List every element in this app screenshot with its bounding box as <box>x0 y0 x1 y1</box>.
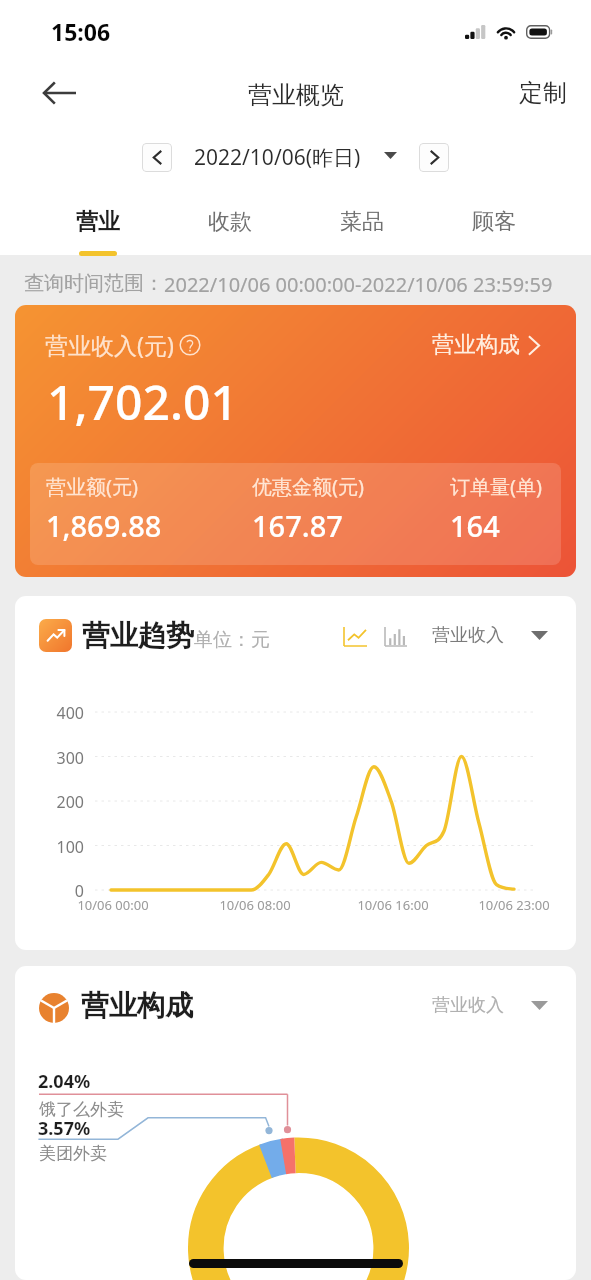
staticText: 营业概览 <box>248 80 344 110</box>
staticText: 营业额(元) <box>46 473 138 500</box>
staticText: 顾客 <box>472 208 516 236</box>
staticText: 10/06 16:00 <box>343 896 443 914</box>
staticText: 查询时间范围： <box>24 271 164 296</box>
staticText: 营业构成 <box>432 331 520 359</box>
staticText: 单位：元 <box>194 628 270 652</box>
staticText: 2022/10/06 00:00:00-2022/10/06 23:59:59 <box>164 271 553 298</box>
staticText: 1,869.88 <box>46 506 162 545</box>
staticText: 0 <box>34 880 84 902</box>
button[interactable]: 营业 <box>31 185 164 255</box>
staticText: 1,702.01 <box>47 369 238 434</box>
staticText: 400 <box>34 702 84 724</box>
staticText: 2.04% <box>38 1069 91 1094</box>
button[interactable]: Bar chart <box>381 621 411 651</box>
button[interactable]: 营业收入(元) <box>15 305 576 577</box>
button[interactable]: Back <box>33 67 85 119</box>
staticText: 营业趋势 <box>82 618 194 653</box>
staticText: 优惠金额(元) <box>252 473 364 500</box>
staticText: 菜品 <box>340 208 384 236</box>
staticText: 美团外卖 <box>39 1143 107 1164</box>
staticText: 10/06 08:00 <box>205 896 305 914</box>
button[interactable]: Next day <box>419 143 449 172</box>
staticText: 10/06 00:00 <box>63 896 163 914</box>
staticText: 300 <box>34 747 84 769</box>
staticText: 3.57% <box>38 1116 91 1141</box>
staticText: 100 <box>34 836 84 858</box>
staticText: 营业收入 <box>432 994 504 1017</box>
button[interactable]: Line chart <box>340 621 370 651</box>
button[interactable]: 营业收入 <box>432 994 548 1017</box>
staticText: 200 <box>34 791 84 813</box>
button[interactable]: 营业收入 <box>432 624 548 647</box>
staticText: 167.87 <box>252 506 343 545</box>
button[interactable]: 菜品 <box>296 185 428 255</box>
staticText: 营业 <box>76 208 120 236</box>
button[interactable]: 顾客 <box>428 185 560 255</box>
staticText: 营业构成 <box>81 988 193 1023</box>
staticText: 10/06 23:00 <box>464 896 564 914</box>
staticText: 15:06 <box>51 16 111 47</box>
staticText: 营业收入(元) <box>45 329 174 360</box>
button[interactable]: 收款 <box>164 185 296 255</box>
button[interactable]: Previous day <box>142 143 172 172</box>
button[interactable]: 2022/10/06(昨日) <box>194 143 397 172</box>
button[interactable]: 营业构成 <box>432 331 540 359</box>
staticText: 2022/10/06(昨日) <box>194 143 361 172</box>
staticText: 定制 <box>519 78 567 108</box>
button[interactable]: 定制 <box>509 68 577 118</box>
staticText: 164 <box>450 506 500 545</box>
staticText: 收款 <box>208 208 252 236</box>
staticText: 饿了么外卖 <box>39 1099 124 1120</box>
staticText: 订单量(单) <box>450 473 542 500</box>
staticText: 营业收入 <box>432 624 504 647</box>
